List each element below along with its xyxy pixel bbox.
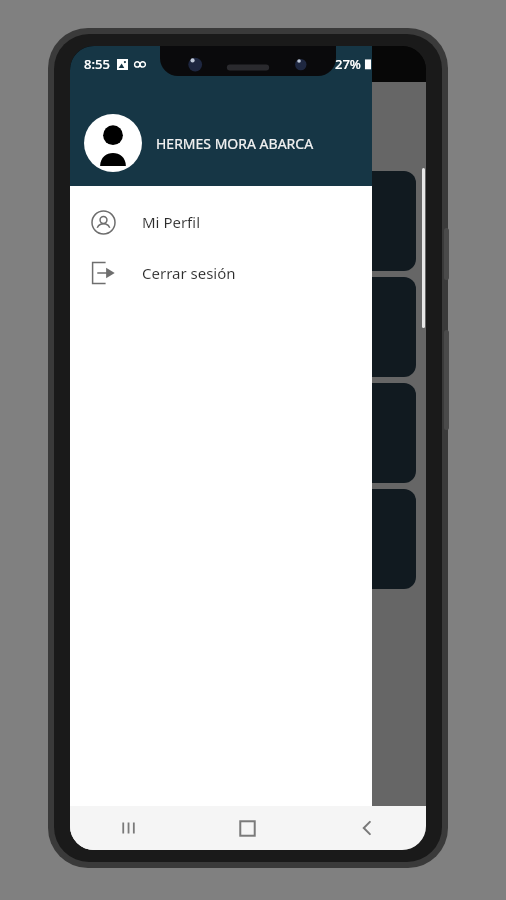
staticText: HERMES MORA ABARCA (156, 134, 314, 153)
button[interactable]: Recent apps (70, 806, 188, 850)
button[interactable]: Cerrar sesión (70, 247, 372, 298)
button[interactable]: Back (307, 806, 426, 850)
staticText: Mi Perfil (142, 212, 201, 232)
staticText: 8:55 (84, 55, 110, 73)
staticText: Cerrar sesión (142, 263, 236, 283)
button[interactable]: INFORMACIÓN (80, 383, 416, 483)
button[interactable]: HERMES MORA ABARCA (84, 114, 314, 172)
staticText: 27% (335, 55, 361, 73)
button[interactable] (80, 489, 416, 589)
button[interactable] (80, 171, 416, 271)
button[interactable] (80, 277, 416, 377)
button[interactable]: Mi Perfil (70, 196, 372, 247)
button[interactable]: Home (188, 806, 307, 850)
